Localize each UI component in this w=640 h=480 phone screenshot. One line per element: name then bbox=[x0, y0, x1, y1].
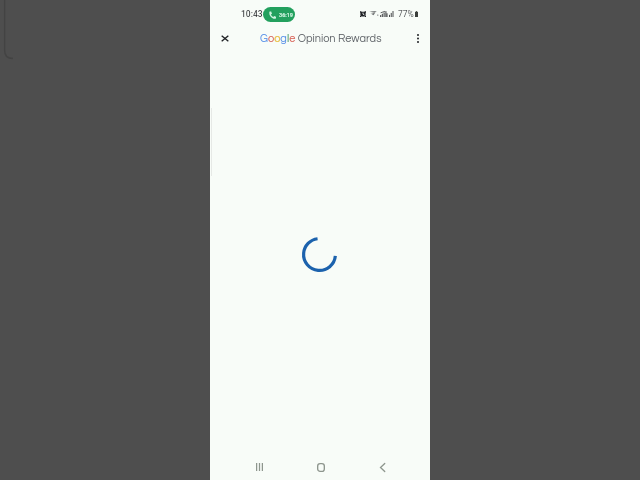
button[interactable]: Ongoing call bbox=[263, 7, 295, 22]
button[interactable]: Home bbox=[291, 447, 351, 480]
button[interactable]: Close bbox=[213, 26, 237, 50]
staticText: 77% bbox=[398, 9, 414, 19]
staticText: 36:19 bbox=[279, 12, 293, 18]
staticText: Google Opinion Rewards bbox=[260, 33, 382, 44]
button[interactable]: Back bbox=[352, 447, 412, 480]
other: Loading bbox=[302, 237, 337, 272]
button[interactable]: More options bbox=[406, 26, 430, 50]
staticText: 10:43 bbox=[241, 9, 263, 19]
button[interactable]: Recents bbox=[229, 447, 289, 480]
